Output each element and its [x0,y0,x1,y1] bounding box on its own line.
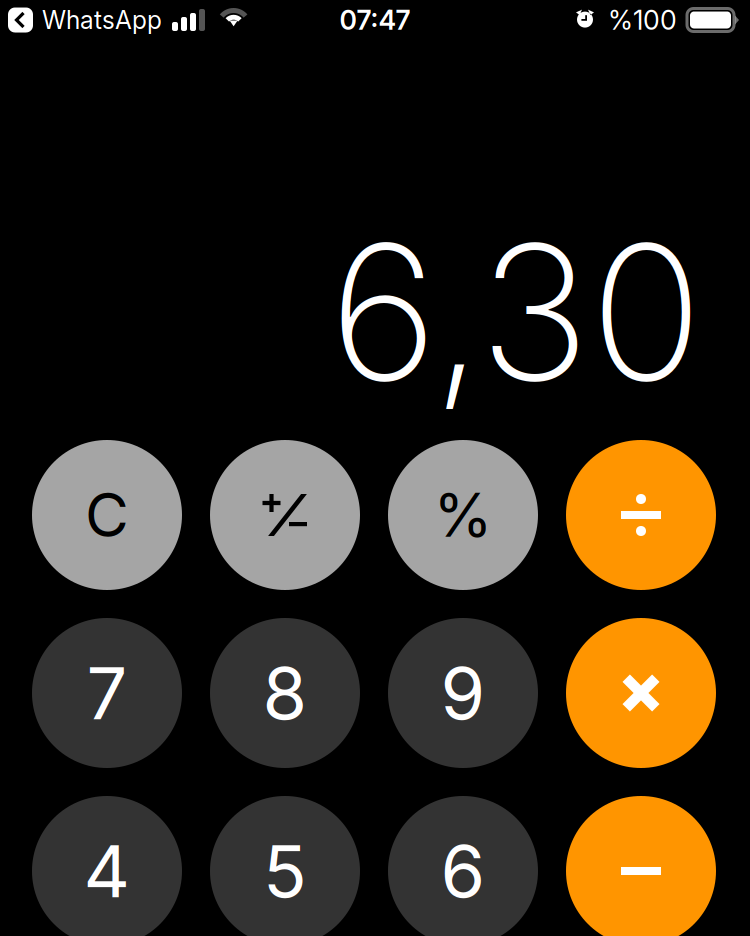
staticText: 4 [83,827,130,914]
button[interactable]: Divide [566,440,716,590]
staticText: C [85,479,129,551]
staticText: 6 [440,827,485,914]
staticText: % [433,479,492,551]
staticText: WhatsApp [42,5,162,35]
button[interactable]: Subtract [566,796,716,936]
staticText: %100 [608,4,677,36]
button[interactable]: 6 [388,796,538,936]
staticText: 5 [263,827,307,914]
button[interactable]: 7 [32,618,182,768]
staticText: 8 [262,649,307,736]
staticText: 07:47 [339,4,410,36]
button[interactable]: Back to WhatsApp [8,5,162,35]
button[interactable]: Clear [32,440,182,590]
button[interactable]: 8 [210,618,360,768]
staticText: 9 [440,649,485,736]
button[interactable]: Percent [388,440,538,590]
button[interactable]: 9 [388,618,538,768]
button[interactable]: Multiply [566,618,716,768]
button[interactable]: 5 [210,796,360,936]
staticText: 7 [86,649,127,736]
button[interactable]: 4 [32,796,182,936]
staticText: 6,30 [329,199,703,425]
button[interactable]: Plus minus [210,440,360,590]
